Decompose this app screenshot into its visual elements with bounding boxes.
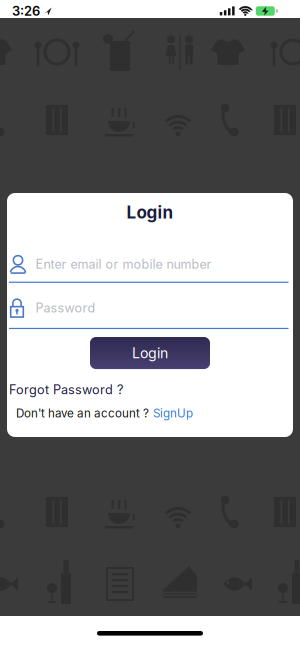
staticText: SignUp <box>153 406 193 420</box>
button[interactable]: Password <box>7 298 293 318</box>
staticText: Forgot Password ? <box>9 382 123 397</box>
button[interactable]: Login <box>90 337 210 369</box>
button[interactable]: SignUp <box>153 406 193 420</box>
button[interactable]: Enter email or mobile number <box>7 255 293 274</box>
staticText: Password <box>35 300 95 315</box>
staticText: Don't have an account ? <box>16 406 149 420</box>
staticText: Login <box>126 202 173 223</box>
button[interactable]: Forgot Password ? <box>7 382 293 397</box>
staticText: Login <box>132 344 168 362</box>
staticText: 3:26 <box>12 3 40 19</box>
staticText: Enter email or mobile number <box>35 257 211 272</box>
